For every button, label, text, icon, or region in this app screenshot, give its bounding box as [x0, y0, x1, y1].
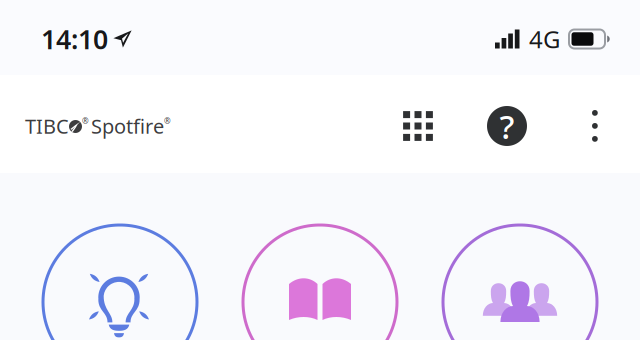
staticText: 14:10: [41, 21, 108, 57]
button[interactable]: Apps: [389, 92, 447, 160]
staticText: ?: [499, 104, 514, 148]
button[interactable]: Tips: [43, 225, 197, 340]
staticText: TIBC: [25, 113, 69, 139]
staticText: Spotfire: [91, 113, 164, 139]
staticText: ®: [82, 116, 89, 126]
button[interactable]: Community: [443, 225, 597, 340]
button[interactable]: Help: [447, 92, 567, 160]
button[interactable]: Learn: [243, 225, 397, 340]
staticText: ®: [164, 116, 171, 126]
staticText: 4G: [529, 23, 560, 55]
button[interactable]: More options: [567, 92, 623, 160]
